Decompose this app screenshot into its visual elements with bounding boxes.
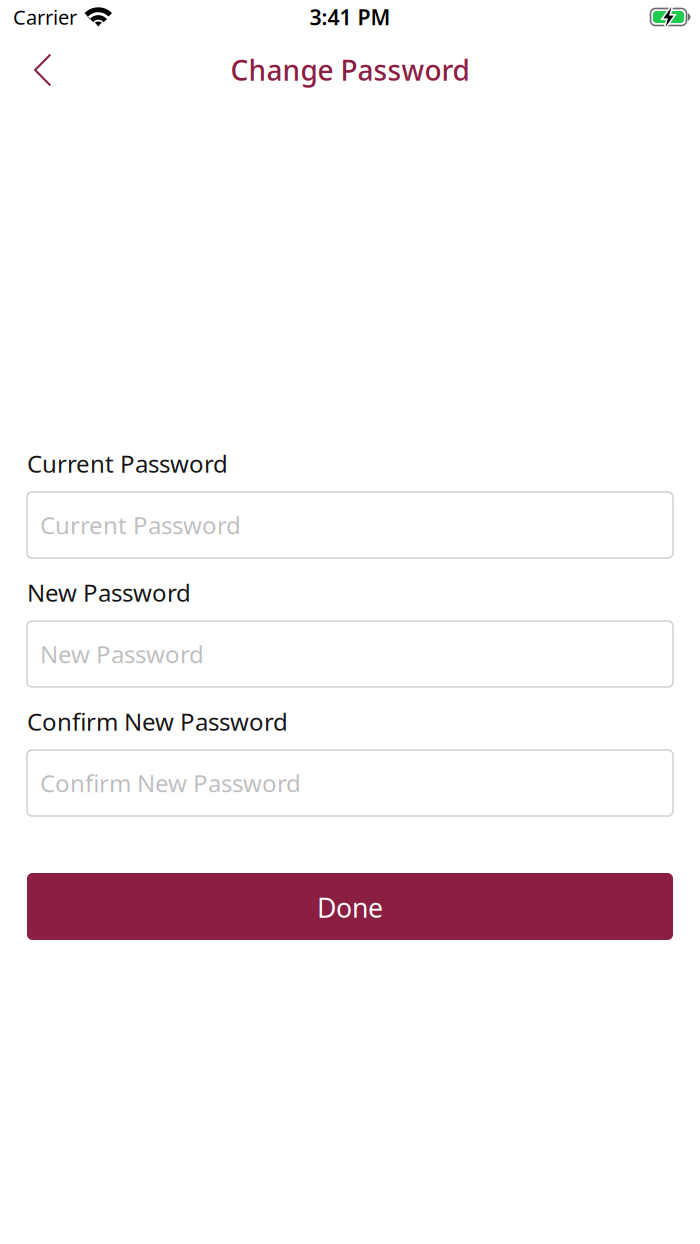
staticText: New Password [27,577,191,608]
staticText: Change Password [230,51,469,89]
button[interactable]: Current Password [27,492,673,558]
staticText: Carrier [13,4,77,30]
button[interactable]: Back [0,35,73,90]
button[interactable]: Done [27,873,673,940]
staticText: Confirm New Password [27,706,288,737]
staticText: 3:41 PM [309,3,390,31]
staticText: Current Password [27,448,228,479]
staticText: Confirm New Password [40,767,301,799]
staticText: Current Password [40,509,241,541]
staticText: New Password [40,638,204,670]
button[interactable]: Confirm New Password [27,750,673,816]
button[interactable]: New Password [27,621,673,687]
staticText: Done [317,890,383,925]
